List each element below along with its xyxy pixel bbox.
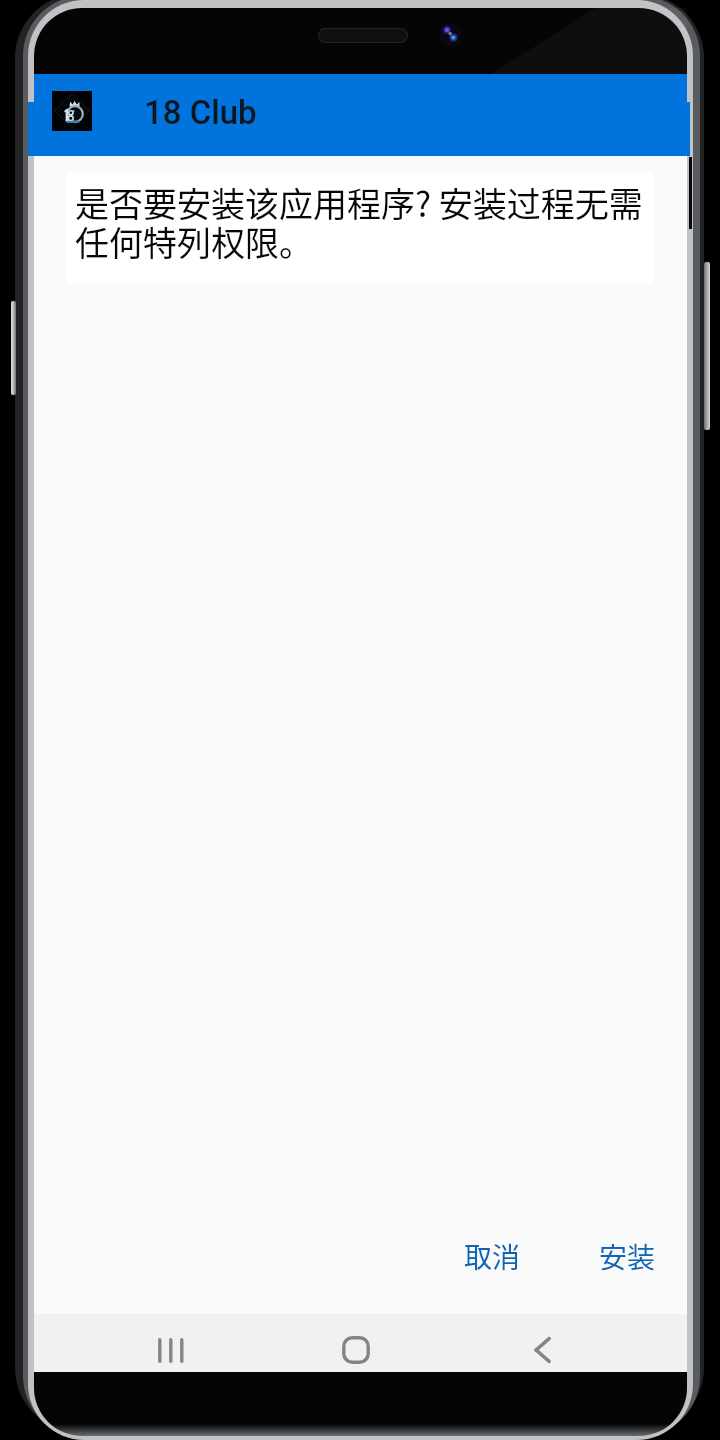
staticText: 取消: [464, 1236, 521, 1277]
button[interactable]: Back: [511, 1329, 569, 1371]
button[interactable]: 安装: [581, 1220, 674, 1293]
staticText: 是否要安装该应用程序? 安装过程无需任何特列权限。: [75, 178, 647, 266]
button[interactable]: 取消: [446, 1220, 539, 1293]
staticText: 安装: [599, 1236, 656, 1277]
staticText: 18 Club: [144, 93, 257, 132]
button[interactable]: Recent apps: [142, 1329, 200, 1371]
button[interactable]: Home: [327, 1329, 385, 1371]
